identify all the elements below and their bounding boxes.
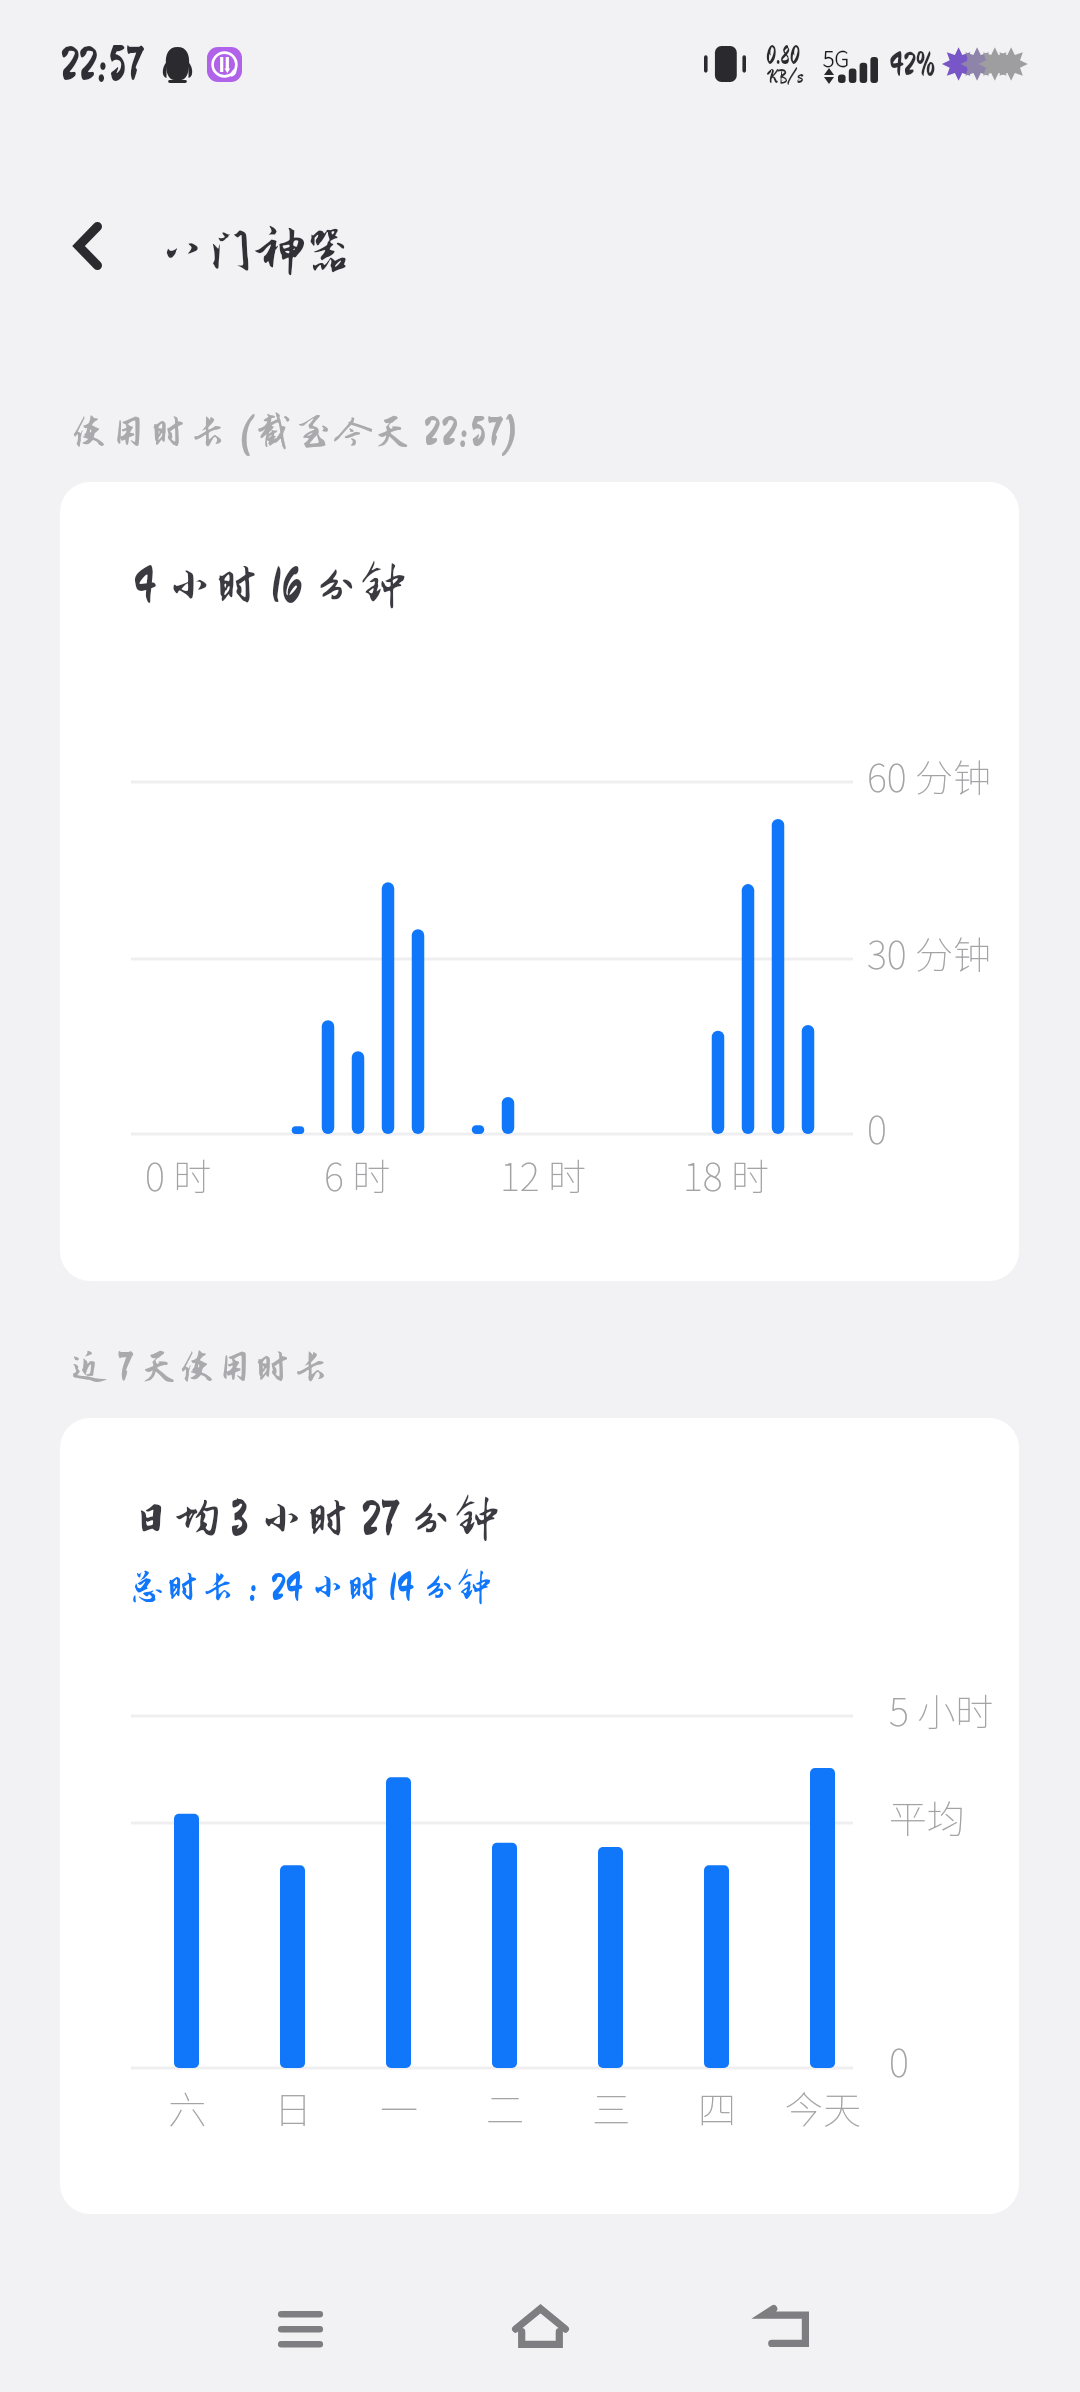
staticText: 30 分钟	[867, 925, 991, 980]
staticText: 0.80	[766, 43, 800, 68]
staticText: 22:57	[60, 40, 143, 89]
staticText: 六	[168, 2080, 207, 2135]
staticText: 60 分钟	[867, 748, 991, 803]
staticText: 日	[274, 2080, 313, 2135]
staticText: KB/s	[767, 66, 804, 86]
staticText: 平均	[889, 1789, 966, 1844]
staticText: 今天	[785, 2080, 862, 2135]
staticText: 6 时	[324, 1147, 391, 1202]
staticText: 0	[867, 1100, 887, 1155]
staticText: 三	[592, 2080, 631, 2135]
button[interactable]: 日均 3 小时 27 分钟	[60, 1418, 1019, 2214]
staticText: 四	[698, 2080, 737, 2135]
staticText: 5 小时	[889, 1682, 994, 1737]
staticText: 二	[486, 2080, 525, 2135]
staticText: 12 时	[500, 1147, 586, 1202]
staticText: 一	[380, 2080, 419, 2135]
staticText: 4 小时 16 分钟	[133, 559, 407, 611]
button[interactable]: Back	[724, 2266, 844, 2386]
staticText: 总时长：24 小时 14 分钟	[130, 1568, 492, 1607]
staticText: 0 时	[145, 1147, 212, 1202]
button[interactable]: Recents	[240, 2269, 360, 2389]
staticText: 八门神器	[158, 224, 353, 278]
staticText: 近 7 天使用时长	[71, 1346, 330, 1388]
staticText: 0	[889, 2033, 909, 2088]
button[interactable]: Home	[480, 2266, 600, 2386]
button[interactable]: Back	[44, 202, 132, 290]
staticText: 42%	[889, 48, 936, 81]
staticText: 使用时长 (截至今天 22:57)	[70, 411, 520, 453]
staticText: 18 时	[683, 1147, 769, 1202]
staticText: 5G	[823, 41, 850, 73]
staticText: 日均 3 小时 27 分钟	[128, 1493, 500, 1544]
button[interactable]: 4 小时 16 分钟	[60, 482, 1019, 1281]
